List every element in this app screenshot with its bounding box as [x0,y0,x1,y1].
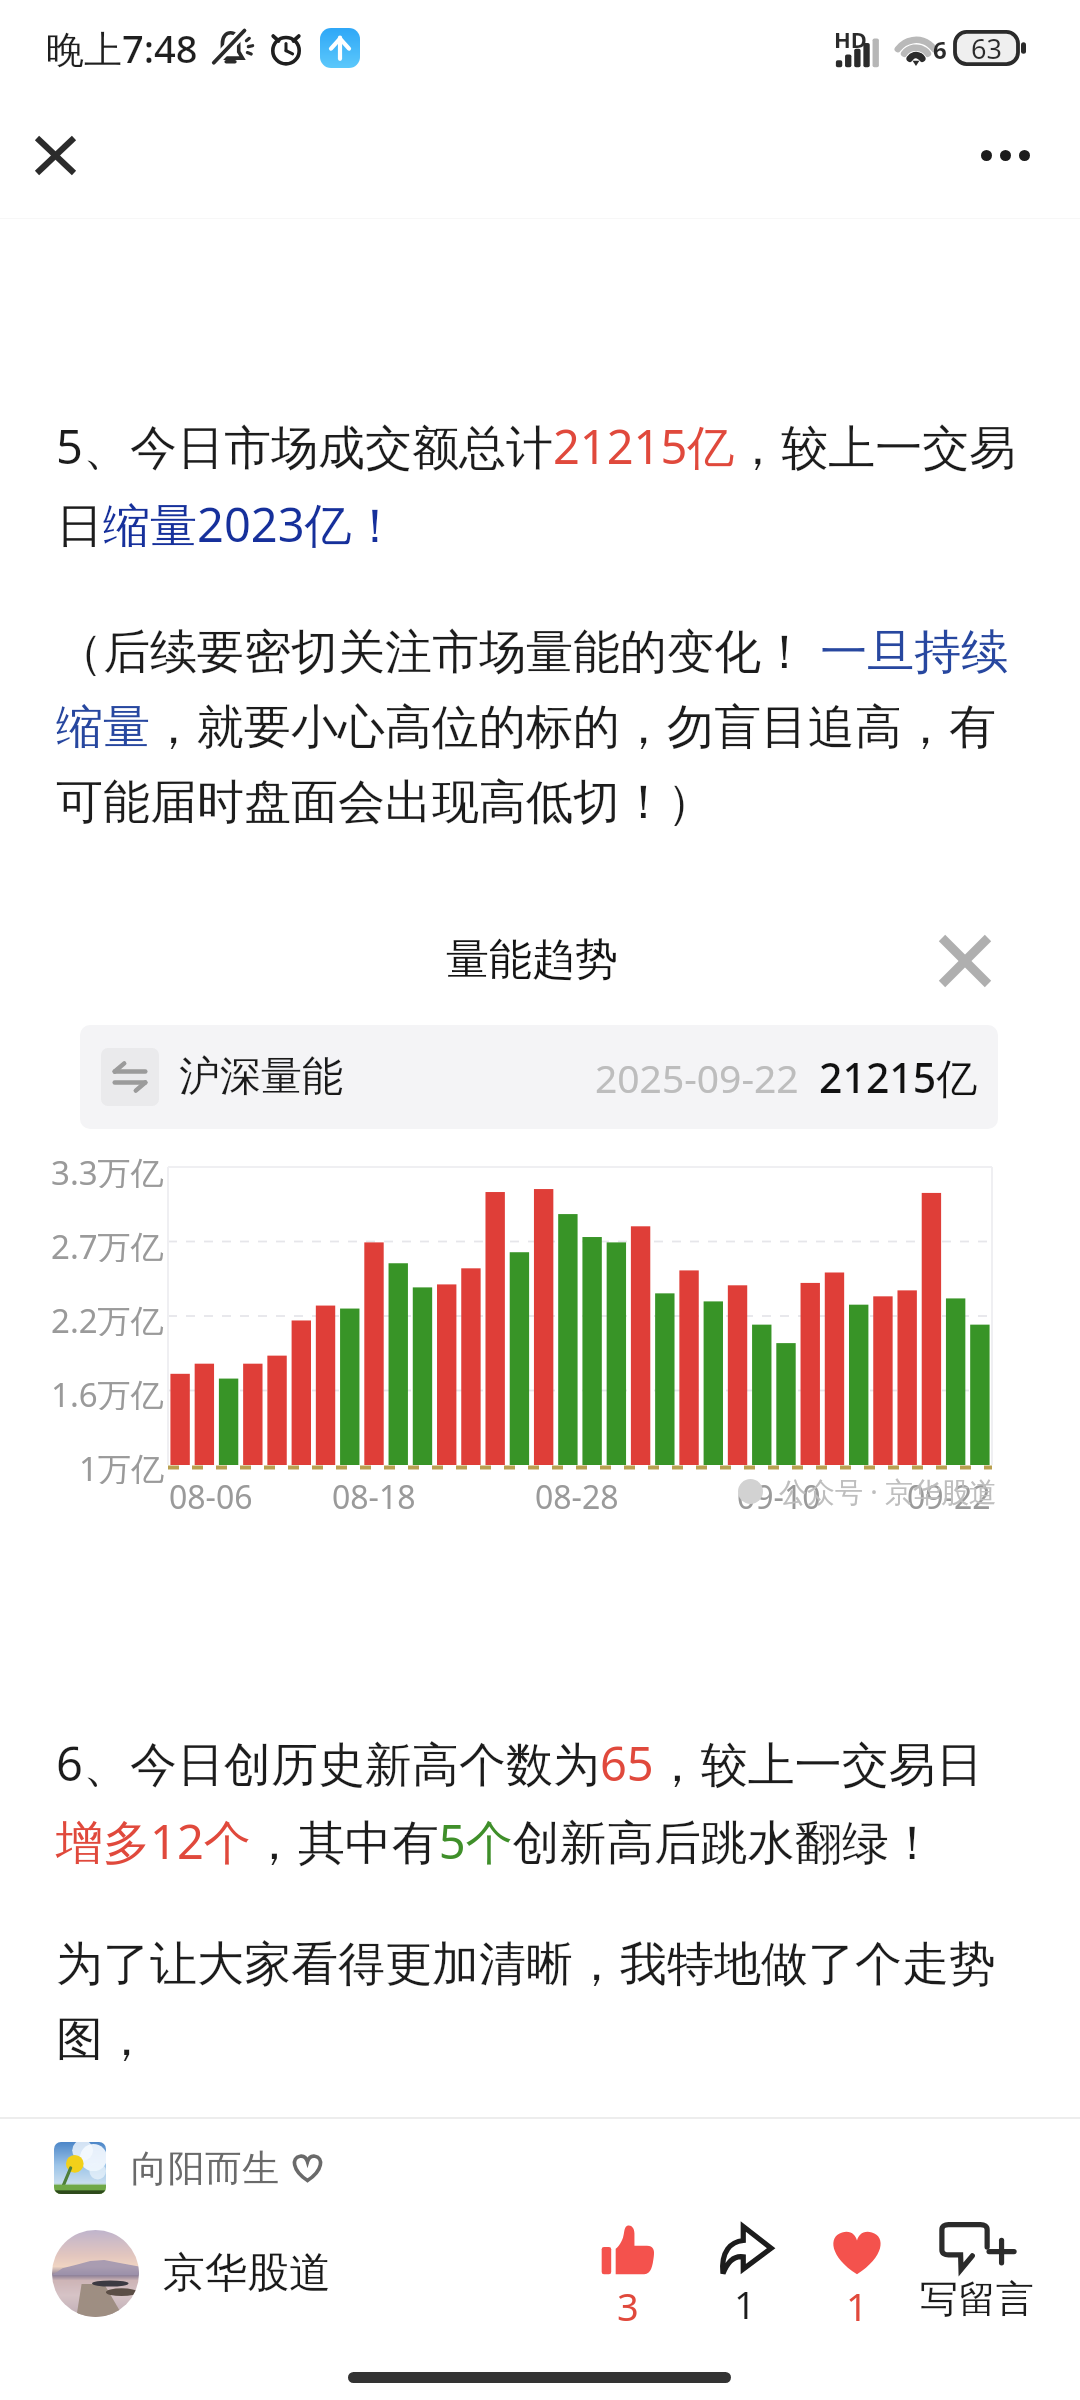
staticText: 08-28 [535,1475,619,1519]
staticText: 3 [617,2280,639,2332]
staticText: 09-10 [737,1475,821,1519]
staticText: 63 [971,30,1002,67]
staticText: 1万亿 [79,1446,164,1484]
staticText: 1.6万亿 [51,1372,164,1410]
staticText: 08-06 [169,1475,253,1519]
staticText: 公众号 · 京华股道 [779,1472,998,1510]
staticText: 为了让大家看得更加清晰，我特地做了个走势 图， [56,1935,996,2069]
staticText: 向阳而生 [131,2145,279,2192]
staticText: 21215亿 [819,1049,978,1105]
button[interactable]: Close [6,110,104,200]
staticText: 09-22 [907,1475,991,1519]
staticText: 量能趋势 [446,933,618,987]
staticText: 3.3万亿 [51,1150,164,1188]
staticText: 08-18 [332,1475,416,1519]
staticText: （后续要密切关注市场量能的变化！ 一旦持续缩量，就要小心高位的标的，勿盲目追高，… [56,618,1038,832]
staticText: 晚上7:48 [46,22,198,74]
staticText: 沪深量能 [179,1051,343,1103]
button[interactable]: Favorite [802,2222,912,2332]
button[interactable]: More options [954,110,1056,200]
button[interactable]: Share [690,2222,800,2330]
button[interactable]: 沪深量能 [80,1025,998,1129]
button[interactable]: Write comment [912,2218,1042,2323]
staticText: 1 [846,2280,868,2332]
staticText: 1 [734,2278,756,2330]
staticText: 6 [933,33,947,66]
button[interactable]: 向阳而生 [54,2142,324,2194]
button[interactable]: Like [573,2222,683,2332]
staticText: 2025-09-22 [595,1051,799,1104]
button[interactable]: Close chart [923,919,1007,1003]
staticText: 2.7万亿 [51,1224,164,1262]
staticText: 京华股道 [163,2247,331,2300]
staticText: 5、今日市场成交额总计21215亿，较上一交易日缩量2023亿！ [56,414,1038,556]
staticText: 写留言 [920,2275,1034,2323]
staticText: HD [834,24,867,54]
button[interactable]: 京华股道 [52,2230,331,2317]
staticText: 2.2万亿 [51,1298,164,1336]
staticText: 6、今日创历史新高个数为65，较上一交易日 增多12个，其中有5个创新高后跳水翻… [56,1731,983,1873]
